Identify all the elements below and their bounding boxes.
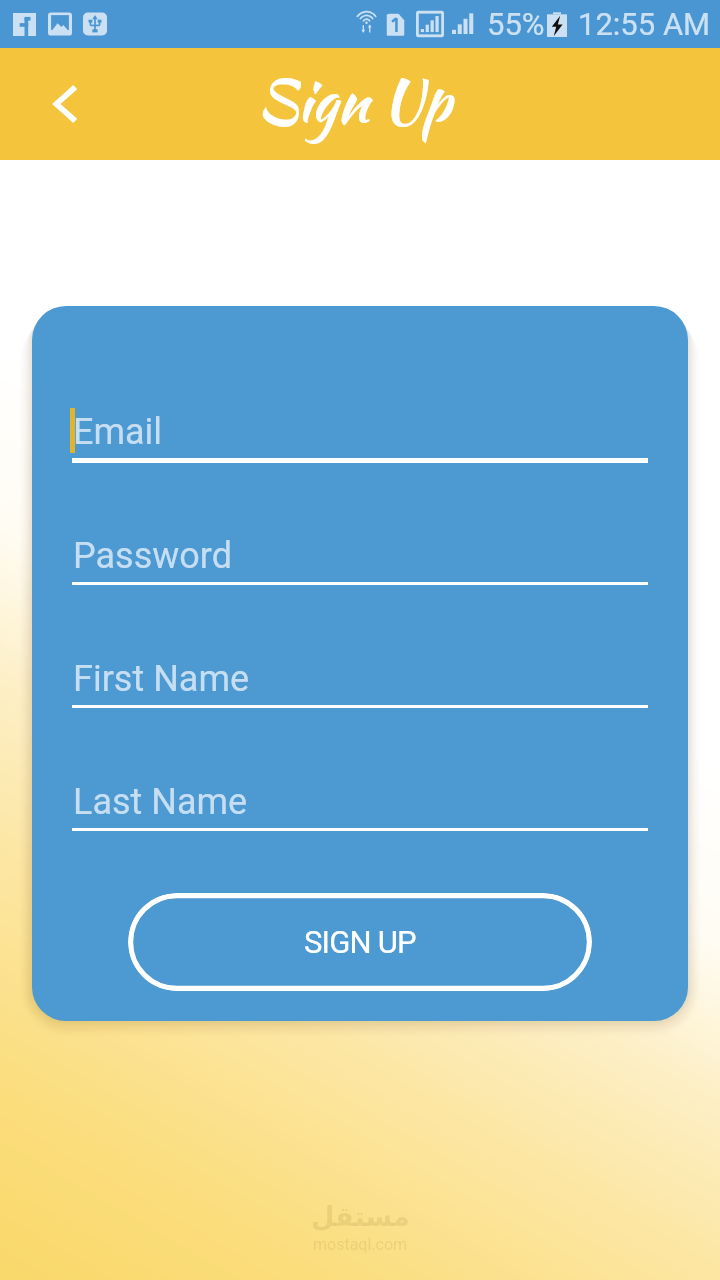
- staticText: Email: [73, 411, 163, 453]
- button[interactable]: SIGN UP: [128, 893, 592, 991]
- staticText: 12:55 AM: [578, 6, 711, 42]
- staticText: 55%: [487, 6, 545, 42]
- staticText: First Name: [73, 658, 250, 700]
- button[interactable]: Last Name: [72, 770, 648, 831]
- button[interactable]: Password: [72, 524, 648, 585]
- staticText: mostaql.com: [313, 1235, 408, 1254]
- staticText: Sign Up: [257, 59, 451, 143]
- button[interactable]: Back: [33, 71, 99, 137]
- staticText: Last Name: [73, 781, 248, 823]
- staticText: مستقل: [311, 1201, 410, 1232]
- staticText: Password: [73, 535, 233, 577]
- button[interactable]: First Name: [72, 647, 648, 708]
- button[interactable]: Email: [72, 400, 648, 463]
- staticText: SIGN UP: [304, 924, 416, 960]
